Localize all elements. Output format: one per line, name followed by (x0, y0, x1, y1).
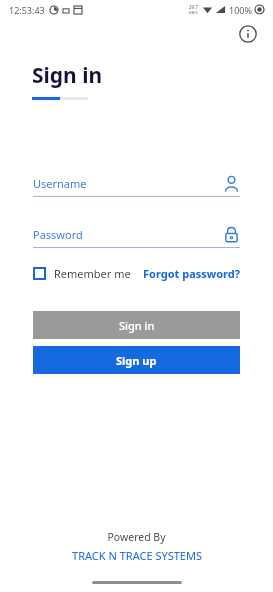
staticText: Sign in (119, 318, 155, 333)
staticText: Password (33, 227, 83, 242)
staticText: 29.7 (189, 4, 198, 10)
button[interactable]: Forgot password? (143, 266, 240, 281)
button[interactable]: Password (33, 226, 240, 248)
staticText: Username (33, 176, 87, 191)
button[interactable]: Sign in (33, 311, 240, 339)
staticText: TRACK N TRACE SYSTEMS (72, 548, 202, 563)
staticText: 100% (229, 4, 252, 16)
staticText: Remember me (54, 266, 131, 281)
button[interactable]: Sign up (33, 346, 240, 374)
staticText: Sign in (32, 61, 103, 90)
staticText: Forgot password? (143, 266, 240, 281)
button[interactable]: Username (33, 175, 240, 197)
button[interactable]: Information (237, 23, 259, 45)
button[interactable]: Remember me (33, 266, 131, 281)
staticText: Powered By (107, 530, 166, 544)
staticText: Sign up (116, 353, 157, 368)
staticText: 12:53:43 (9, 4, 45, 16)
staticText: KB/S (189, 10, 198, 15)
